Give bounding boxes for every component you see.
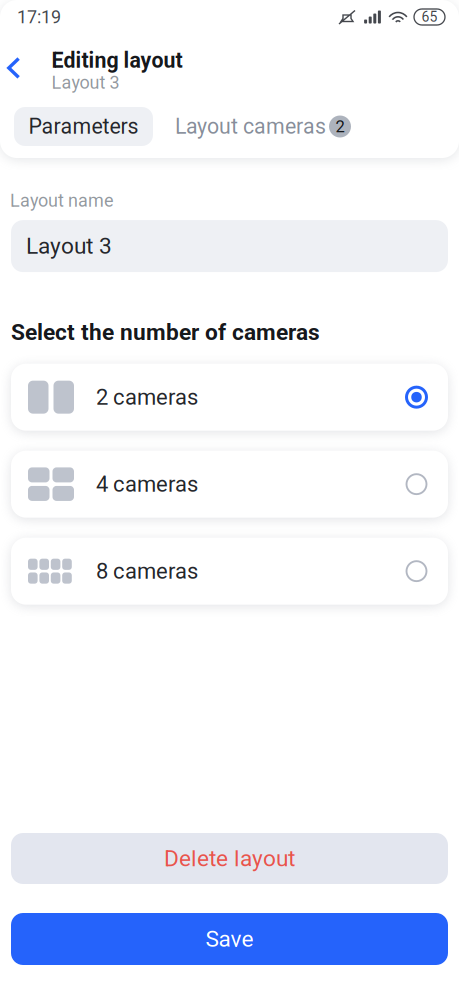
staticText: 2 cameras [96, 384, 198, 410]
staticText: Layout name [10, 190, 114, 211]
staticText: 65 [421, 9, 437, 25]
staticText: Select the number of cameras [11, 319, 320, 346]
staticText: 17:19 [17, 6, 61, 28]
button[interactable]: 2 cameras [11, 364, 448, 431]
button[interactable]: Layout cameras [153, 107, 363, 146]
staticText: 4 cameras [96, 471, 198, 497]
button[interactable]: 4 cameras [11, 451, 448, 518]
staticText: Delete layout [164, 845, 295, 872]
button[interactable]: Back [0, 48, 51, 87]
staticText: Parameters [28, 114, 138, 139]
staticText: Save [205, 926, 253, 952]
staticText: Layout cameras [175, 114, 326, 139]
staticText: Editing layout [51, 48, 182, 73]
button[interactable]: Delete layout [11, 833, 448, 884]
staticText: 2 [335, 117, 344, 136]
button[interactable]: Parameters [14, 107, 153, 146]
staticText: Layout 3 [51, 72, 119, 93]
button[interactable]: 8 cameras [11, 538, 448, 605]
staticText: 8 cameras [96, 558, 198, 584]
staticText: Layout 3 [26, 233, 112, 259]
button[interactable]: Save [11, 913, 448, 965]
